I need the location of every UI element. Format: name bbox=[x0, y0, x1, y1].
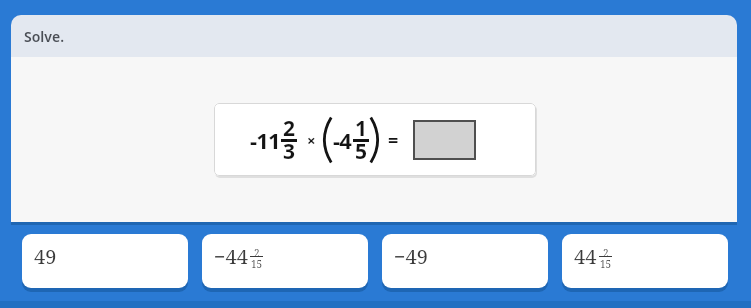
staticText: −44 bbox=[214, 243, 248, 270]
button[interactable]: 44 bbox=[562, 234, 728, 288]
staticText: 2 bbox=[283, 114, 295, 143]
staticText: = bbox=[388, 128, 398, 153]
staticText: 5 bbox=[355, 137, 367, 166]
staticText: 44 bbox=[574, 243, 597, 270]
staticText: 2 bbox=[603, 246, 609, 256]
staticText: 2 bbox=[254, 246, 260, 256]
staticText: Solve. bbox=[24, 27, 65, 46]
button[interactable]: −49 bbox=[382, 234, 548, 288]
button[interactable]: 49 bbox=[22, 234, 188, 288]
staticText: 15 bbox=[600, 257, 612, 268]
staticText: -11 bbox=[250, 125, 280, 155]
staticText: 49 bbox=[34, 243, 57, 270]
button[interactable]: −44 bbox=[202, 234, 368, 288]
staticText: 1 bbox=[355, 114, 367, 143]
staticText: −49 bbox=[394, 243, 428, 270]
staticText: × bbox=[307, 130, 315, 150]
staticText: 15 bbox=[251, 257, 263, 268]
button[interactable] bbox=[413, 120, 476, 160]
staticText: 3 bbox=[283, 137, 295, 166]
staticText: -4 bbox=[333, 125, 352, 155]
